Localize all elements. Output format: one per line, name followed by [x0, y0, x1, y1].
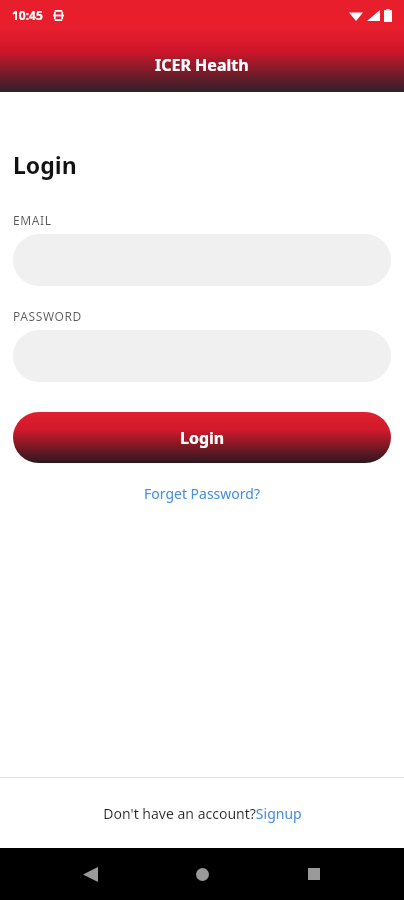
button[interactable]: Login	[13, 412, 391, 463]
staticText: EMAIL	[13, 212, 52, 228]
staticText: Login	[180, 427, 225, 449]
staticText: 10:45	[12, 7, 43, 23]
staticText: Forget Password?	[144, 484, 260, 503]
staticText: Don't have an account?Signup	[103, 804, 302, 823]
staticText: Login	[13, 149, 77, 180]
button[interactable]: Forget Password?	[136, 482, 268, 505]
button[interactable]: Don't have an account?Signup	[103, 804, 302, 823]
staticText: PASSWORD	[13, 308, 82, 324]
staticText: ICER Health	[155, 54, 249, 76]
button[interactable]: Home	[180, 852, 224, 896]
button[interactable]: Back	[68, 852, 112, 896]
button[interactable]: Recent apps	[292, 852, 336, 896]
